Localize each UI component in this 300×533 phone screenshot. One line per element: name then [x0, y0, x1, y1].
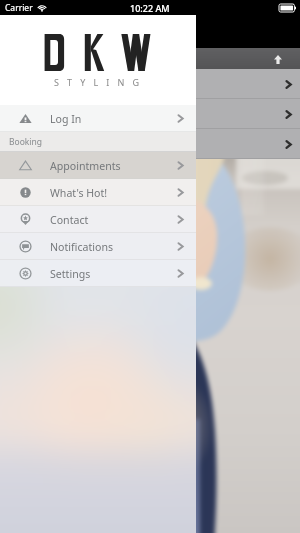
button[interactable]: Settings	[0, 260, 196, 287]
button[interactable]: What's Hot!	[0, 179, 196, 206]
staticText: Settings	[50, 267, 91, 281]
button[interactable]: Appointments	[0, 152, 196, 179]
staticText: Notifications	[50, 240, 114, 254]
button[interactable]	[0, 69, 300, 99]
button[interactable]: Contact	[0, 206, 196, 233]
button[interactable]: Scroll to top	[268, 49, 288, 69]
staticText: Log In	[50, 112, 82, 126]
staticText: What's Hot!	[50, 186, 108, 200]
staticText: S T Y L I N G	[54, 76, 142, 88]
staticText: 10:22 AM	[130, 2, 170, 14]
staticText: Carrier	[5, 2, 33, 14]
staticText: Appointments	[50, 159, 121, 173]
button[interactable]	[0, 129, 300, 159]
button[interactable]	[0, 99, 300, 129]
staticText: Contact	[50, 213, 89, 227]
button[interactable]: Notifications	[0, 233, 196, 260]
staticText: Booking	[9, 136, 43, 148]
button[interactable]: Log In	[0, 105, 196, 132]
